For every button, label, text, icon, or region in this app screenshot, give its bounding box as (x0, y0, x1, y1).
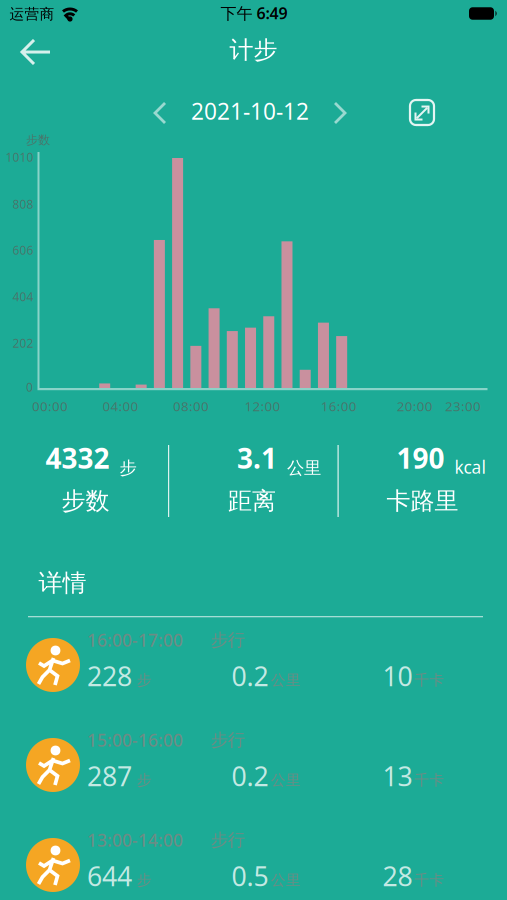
staticText: 步行 (211, 829, 245, 851)
staticText: 13:00-14:00 (87, 828, 183, 851)
staticText: 00:00 (32, 397, 68, 415)
staticText: 步数 (26, 133, 50, 147)
staticText: 公里 (287, 457, 321, 479)
staticText: 公里 (271, 671, 301, 689)
staticText: 千卡 (414, 671, 444, 689)
staticText: 步 (137, 671, 152, 689)
button[interactable]: Fullscreen (409, 99, 435, 125)
staticText: 下午 6:49 (220, 2, 287, 24)
button[interactable]: Back (4, 36, 54, 68)
button[interactable]: 13:00-14:00 (0, 820, 507, 900)
staticText: kcal (454, 456, 485, 479)
staticText: 16:00-17:00 (87, 628, 183, 651)
staticText: 公里 (271, 771, 301, 789)
staticText: 15:00-16:00 (87, 728, 183, 751)
staticText: 2021-10-12 (191, 96, 309, 126)
staticText: 公里 (271, 871, 301, 889)
button[interactable]: 15:00-16:00 (0, 720, 507, 820)
staticText: 08:00 (173, 397, 209, 415)
staticText: 644 (87, 858, 132, 894)
staticText: 16:00 (321, 397, 357, 415)
staticText: 0.2 (231, 658, 268, 694)
staticText: 步 (119, 457, 136, 479)
staticText: 202 (12, 335, 33, 351)
staticText: 13 (382, 758, 412, 794)
staticText: 04:00 (102, 397, 138, 415)
staticText: 距离 (228, 486, 276, 516)
staticText: 606 (12, 242, 33, 258)
staticText: 步行 (211, 729, 245, 751)
staticText: 3.1 (237, 439, 277, 477)
staticText: 卡路里 (386, 486, 458, 516)
staticText: 千卡 (414, 771, 444, 789)
staticText: 28 (382, 858, 412, 894)
button[interactable]: Next day (331, 101, 347, 125)
staticText: 287 (87, 758, 132, 794)
staticText: 0.2 (231, 758, 268, 794)
staticText: 步数 (61, 486, 109, 516)
staticText: 404 (12, 288, 33, 304)
staticText: 千卡 (414, 871, 444, 889)
staticText: 详情 (38, 568, 86, 598)
staticText: 190 (396, 439, 444, 477)
staticText: 计步 (229, 35, 277, 65)
staticText: 0 (26, 379, 33, 395)
staticText: 步 (137, 771, 152, 789)
staticText: 20:00 (397, 397, 433, 415)
staticText: 12:00 (244, 397, 280, 415)
staticText: 运营商 (9, 5, 54, 23)
staticText: 步 (137, 871, 152, 889)
staticText: 1010 (5, 149, 33, 165)
staticText: 步行 (211, 629, 245, 651)
staticText: 10 (382, 658, 412, 694)
staticText: 4332 (45, 439, 109, 477)
staticText: 228 (87, 658, 132, 694)
staticText: 0.5 (231, 858, 268, 894)
staticText: 23:00 (445, 397, 481, 415)
button[interactable]: Previous day (153, 101, 169, 125)
staticText: 808 (12, 196, 33, 212)
button[interactable]: 16:00-17:00 (0, 620, 507, 720)
